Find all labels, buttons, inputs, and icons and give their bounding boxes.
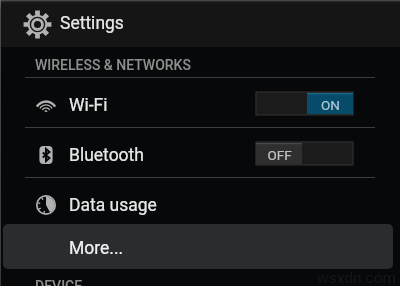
- staticText: Data usage: [69, 195, 157, 216]
- button[interactable]: More...: [3, 224, 393, 269]
- staticText: Bluetooth: [69, 145, 144, 166]
- staticText: ON: [321, 97, 340, 113]
- staticText: wsxdn.com: [317, 269, 397, 286]
- staticText: OFF: [267, 147, 292, 163]
- staticText: More...: [69, 238, 124, 259]
- staticText: WIRELESS & NETWORKS: [35, 57, 191, 73]
- staticText: Settings: [60, 13, 124, 34]
- button[interactable]: Wi-Fi: [0, 78, 400, 127]
- button[interactable]: Settings: [0, 0, 400, 47]
- button[interactable]: Bluetooth: [0, 128, 400, 177]
- button[interactable]: Wi-Fi on: [256, 92, 353, 115]
- button[interactable]: Bluetooth off: [256, 142, 353, 165]
- button[interactable]: Data usage: [0, 178, 400, 227]
- staticText: DEVICE: [35, 278, 83, 286]
- staticText: Wi-Fi: [69, 95, 108, 116]
